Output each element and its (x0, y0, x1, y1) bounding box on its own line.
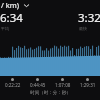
staticText: 6:34 (0, 10, 23, 26)
button[interactable]: / km) (0, 0, 100, 10)
staticText: 3:32 (78, 10, 100, 26)
staticText: 0:44:45 (30, 82, 46, 88)
staticText: 平均 (1, 26, 9, 31)
other: Expand (23, 2, 30, 9)
staticText: 1:07:08 (55, 82, 71, 88)
staticText: / km) (1, 0, 20, 10)
staticText: 1:29:31 (80, 82, 96, 88)
staticText: 0:22:22 (5, 82, 21, 88)
staticText: 最快 (79, 26, 87, 31)
staticText: 时间（时：分：秒） (30, 90, 71, 96)
